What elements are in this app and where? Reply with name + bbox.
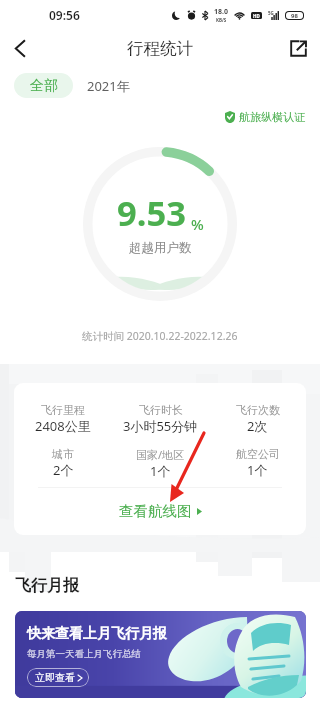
staticText: 每月第一天看上月飞行总结 [27,648,141,660]
staticText: 2次 [247,417,268,435]
staticText: 全部 [30,77,58,95]
staticText: 1个 [150,462,171,480]
staticText: 城市 [52,447,74,461]
staticText: HD [253,13,260,19]
staticText: 9.53 [117,189,186,236]
button[interactable]: 立即查看 [27,668,89,687]
staticText: 5G [268,10,274,16]
staticText: 2个 [53,461,74,479]
button[interactable]: 全部 [14,73,73,98]
staticText: 98 [291,12,298,19]
button[interactable]: 2021年 [73,73,144,98]
staticText: 飞行里程 [41,403,85,417]
staticText: KB/S [216,17,227,23]
staticText: 快来查看上月飞行月报 [27,625,167,643]
staticText: 18.0 [214,7,228,17]
staticText: 飞行月报 [15,576,79,596]
staticText: 航旅纵横认证 [239,110,305,124]
staticText: 航空公司 [236,447,280,461]
button[interactable]: Share [284,34,312,62]
staticText: 09:56 [49,7,80,23]
staticText: 立即查看 [35,671,75,684]
staticText: 2408公里 [35,417,91,435]
staticText: 飞行时长 [139,403,183,417]
staticText: 1个 [247,461,268,479]
staticText: 3小时55分钟 [123,417,198,435]
staticText: 查看航线图 [119,502,192,520]
staticText: % [191,214,204,234]
staticText: 飞行次数 [236,403,280,417]
staticText: 行程统计 [127,38,193,59]
staticText: 2021年 [87,77,130,95]
button[interactable]: Back [2,30,38,66]
button[interactable]: 查看航线图 [14,488,306,534]
staticText: 超越用户数 [129,240,192,256]
button[interactable]: 快来查看上月飞行月报 [15,611,306,698]
staticText: 统计时间 2020.10.22-2022.12.26 [82,329,238,343]
staticText: 国家/地区 [136,447,185,462]
